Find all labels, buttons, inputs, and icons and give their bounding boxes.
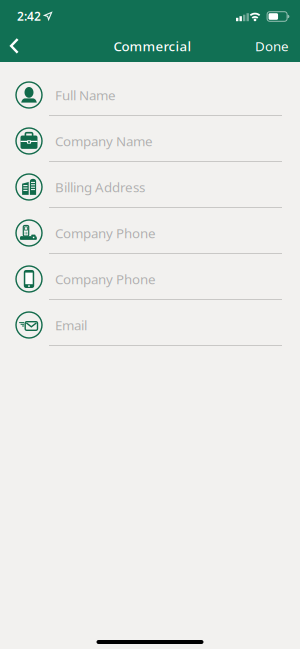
staticText: Company Name	[55, 132, 153, 150]
staticText: Full Name	[55, 86, 116, 104]
staticText: Company Phone	[55, 270, 156, 288]
staticText: Billing Address	[55, 178, 145, 196]
button[interactable]: Company Name	[0, 118, 300, 164]
button[interactable]: Full Name	[0, 72, 300, 118]
staticText: Done	[255, 37, 289, 55]
button[interactable]: Billing Address	[0, 164, 300, 210]
staticText: 2:42	[17, 8, 41, 24]
staticText: Email	[55, 316, 87, 334]
button[interactable]: Back	[0, 31, 31, 61]
staticText: Company Phone	[55, 224, 156, 242]
button[interactable]: Company Phone	[0, 256, 300, 302]
staticText: Commercial	[113, 37, 191, 55]
button[interactable]: Company Phone	[0, 210, 300, 256]
button[interactable]: Done	[255, 31, 300, 61]
button[interactable]: Email	[0, 302, 300, 348]
